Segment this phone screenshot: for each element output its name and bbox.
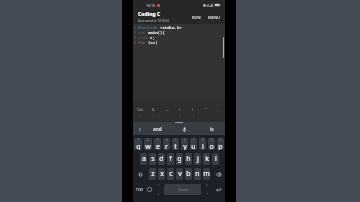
button[interactable]: a: [140, 153, 147, 165]
staticText: c: [169, 169, 173, 179]
staticText: !: [158, 184, 159, 188]
button[interactable]: l: [212, 153, 219, 165]
staticText: x: [160, 169, 164, 179]
staticText: ,: [158, 190, 159, 195]
button[interactable]: &: [147, 100, 160, 122]
staticText: 3: [157, 138, 159, 142]
staticText: →: [139, 115, 142, 119]
staticText: u: [191, 142, 196, 150]
button[interactable]: 1: [134, 138, 142, 150]
staticText: 4: [134, 40, 137, 45]
staticText: 3: [134, 35, 137, 40]
button[interactable]: k: [203, 153, 210, 165]
staticText: l: [215, 154, 217, 164]
button[interactable]: Enter: [211, 183, 225, 196]
staticText: z: [151, 169, 155, 179]
staticText: (: [192, 107, 194, 112]
button[interactable]: c: [136, 122, 145, 136]
staticText: y: [183, 142, 187, 150]
staticText: m: [203, 169, 210, 179]
button[interactable]: h: [185, 153, 192, 165]
staticText: j: [197, 154, 199, 164]
staticText: &: [152, 107, 155, 112]
button[interactable]: x: [158, 168, 165, 180]
button[interactable]: 9: [208, 138, 215, 150]
button[interactable]: Tab: [133, 100, 147, 122]
button[interactable]: Emoji: [145, 183, 154, 196]
staticText: 1: [134, 25, 137, 30]
button[interactable]: and: [143, 122, 171, 136]
staticText: s: [151, 154, 155, 164]
staticText: k: [205, 154, 209, 164]
staticText: ': [206, 115, 207, 119]
staticText: g: [177, 154, 182, 164]
button[interactable]: (: [186, 100, 199, 122]
staticText: 6: [184, 138, 186, 142]
staticText: /: [179, 107, 181, 112]
button[interactable]: /: [173, 100, 186, 122]
button[interactable]: 2: [144, 138, 152, 150]
button[interactable]: f: [167, 153, 174, 165]
button[interactable]: RUN: [190, 12, 203, 23]
staticText: q: [136, 142, 141, 150]
staticText: r: [165, 142, 168, 150]
button[interactable]: 8: [199, 138, 206, 150]
staticText: <stdio.h>: [160, 25, 182, 30]
staticText: ): [193, 115, 194, 119]
button[interactable]: s: [149, 153, 156, 165]
button[interactable]: 7: [190, 138, 197, 150]
button[interactable]: is: [198, 122, 225, 136]
staticText: Auto saved at 10:16:54: [138, 19, 169, 23]
staticText: i: [202, 142, 204, 150]
staticText: c: [139, 126, 142, 132]
staticText: n: [195, 169, 200, 179]
button[interactable]: 3: [154, 138, 161, 150]
button[interactable]: 5: [172, 138, 179, 150]
button[interactable]: 0: [217, 138, 224, 150]
staticText: and: [153, 126, 162, 133]
button[interactable]: m: [203, 168, 210, 180]
staticText: is: [210, 126, 214, 133]
button[interactable]: 4: [163, 138, 170, 150]
staticText: Gboard: [178, 188, 188, 192]
button[interactable]: Voice input: [171, 122, 198, 136]
staticText: *: [179, 115, 181, 119]
staticText: 8: [202, 138, 204, 142]
button[interactable]: c: [167, 168, 174, 180]
button[interactable]: g: [176, 153, 183, 165]
button[interactable]: j: [194, 153, 201, 165]
staticText: :: [218, 115, 219, 119]
staticText: 9: [211, 138, 213, 142]
staticText: w: [145, 142, 151, 150]
staticText: f: [169, 154, 172, 164]
button[interactable]: ?123: [133, 183, 145, 196]
staticText: _: [166, 115, 168, 119]
button[interactable]: n: [194, 168, 201, 180]
button[interactable]: v: [176, 168, 183, 180]
staticText: o: [209, 142, 214, 150]
staticText: char: [138, 35, 150, 40]
button[interactable]: Shift: [134, 168, 147, 180]
staticText: b: [186, 169, 191, 179]
button[interactable]: Gboard: [164, 184, 201, 195]
staticText: —: [165, 107, 169, 112]
staticText: MENU: [208, 15, 220, 20]
staticText: ?123: [136, 188, 143, 192]
staticText: 0: [220, 138, 222, 142]
staticText: int: [138, 30, 148, 35]
staticText: d: [159, 154, 164, 164]
button[interactable]: —: [160, 100, 173, 122]
button[interactable]: d: [158, 153, 165, 165]
staticText: a: [142, 154, 146, 164]
button[interactable]: z: [149, 168, 156, 180]
staticText: Tab: [137, 107, 143, 112]
button[interactable]: 6: [181, 138, 188, 150]
staticText: \: [153, 115, 155, 119]
button[interactable]: !: [154, 183, 163, 196]
button[interactable]: Backspace: [212, 168, 224, 180]
button[interactable]: MENU: [206, 12, 222, 23]
button[interactable]: ?: [202, 183, 211, 196]
button[interactable]: b: [185, 168, 192, 180]
